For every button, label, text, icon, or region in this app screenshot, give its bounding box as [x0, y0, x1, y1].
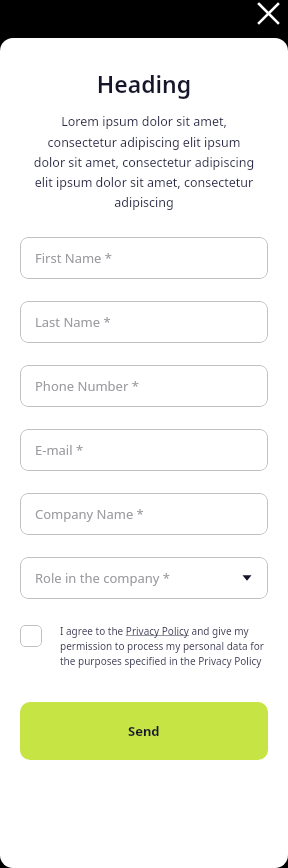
button[interactable]: First Name * — [20, 237, 268, 279]
button[interactable]: E-mail * — [20, 429, 268, 471]
staticText: First Name * — [35, 249, 112, 267]
staticText: Role in the company * — [35, 569, 170, 587]
staticText: Last Name * — [35, 313, 111, 331]
button[interactable]: I agree to the Privacy Policy and give m… — [20, 624, 268, 668]
staticText: I agree to the Privacy Policy and give m… — [60, 624, 268, 668]
staticText: Lorem ipsum dolor sit amet, consectetur … — [32, 113, 256, 210]
button[interactable]: Send — [20, 702, 268, 760]
staticText: E-mail * — [35, 441, 84, 459]
button[interactable]: Company Name * — [20, 493, 268, 535]
staticText: Phone Number * — [35, 377, 139, 395]
staticText: Company Name * — [35, 505, 144, 523]
button[interactable]: Phone Number * — [20, 365, 268, 407]
staticText: Heading — [20, 68, 268, 99]
button[interactable]: Last Name * — [20, 301, 268, 343]
button[interactable]: Role in the company * — [20, 557, 268, 599]
button[interactable]: Close — [256, 1, 280, 25]
staticText: Send — [128, 722, 160, 740]
